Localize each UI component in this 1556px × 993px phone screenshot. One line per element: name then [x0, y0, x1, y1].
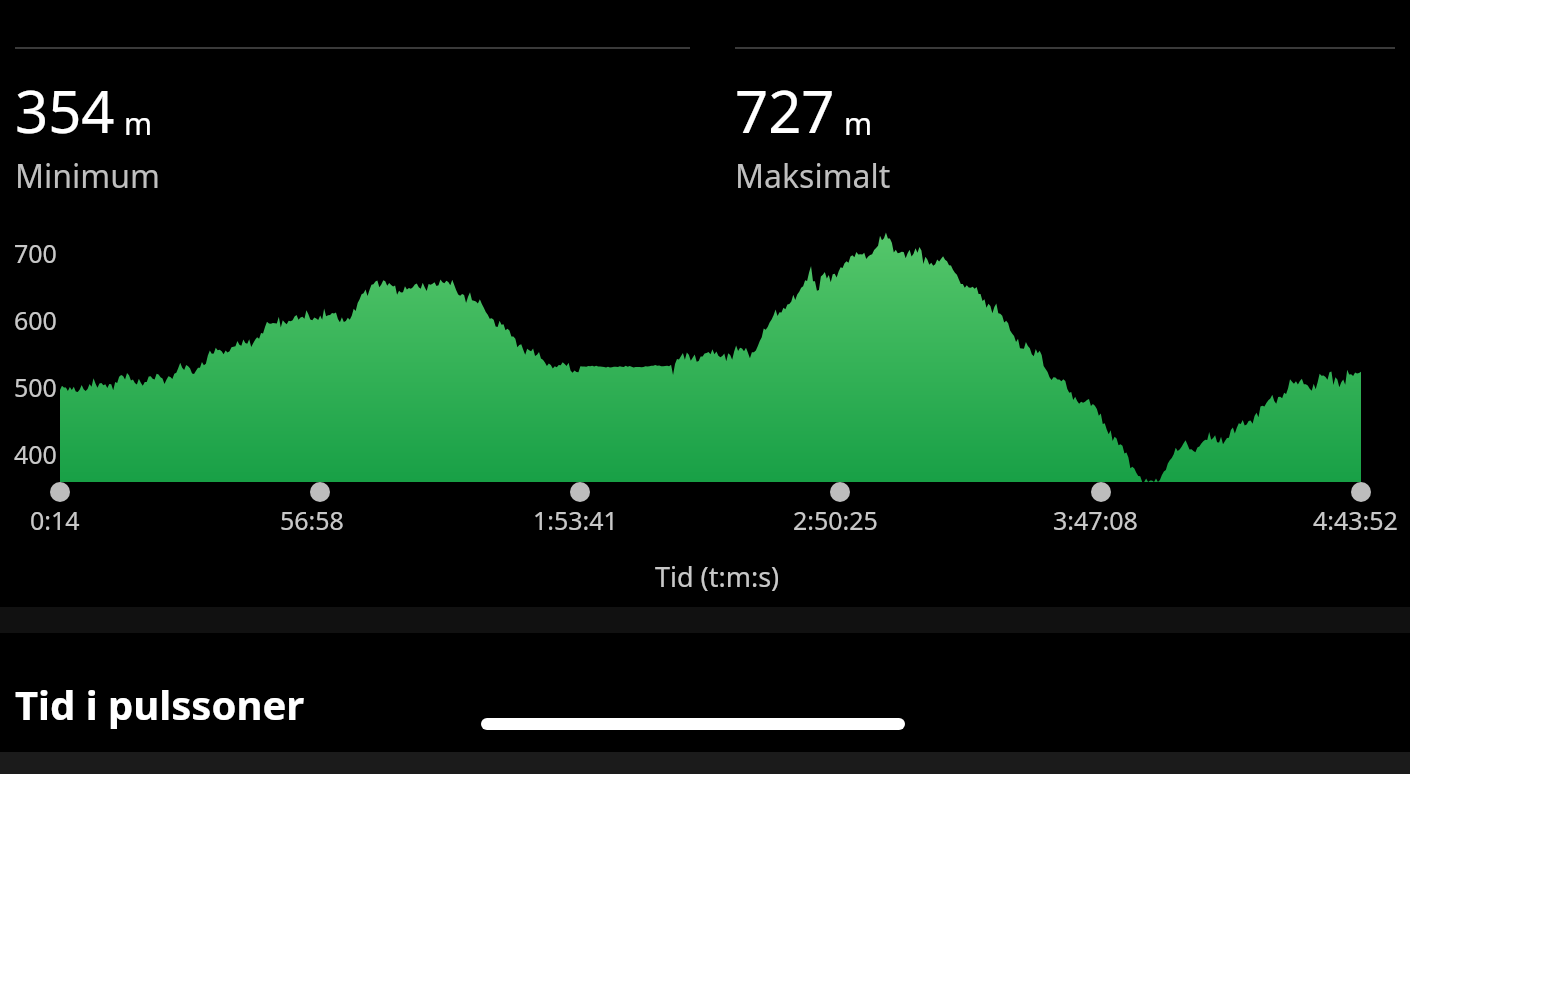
button[interactable]: Tid i pulssoner: [0, 655, 1410, 753]
staticText: 56:58: [280, 503, 344, 537]
staticText: 600: [14, 303, 57, 337]
staticText: Minimum: [15, 154, 160, 198]
staticText: 727: [735, 71, 835, 150]
staticText: Tid (t:m:s): [655, 558, 780, 595]
button[interactable]: 727: [720, 0, 1395, 198]
button[interactable]: Elevation profile chart: [0, 200, 1410, 600]
staticText: 3:47:08: [1053, 503, 1138, 537]
button[interactable]: 354: [0, 0, 690, 198]
staticText: 500: [14, 370, 57, 404]
staticText: m: [844, 103, 873, 144]
staticText: m: [124, 103, 153, 144]
staticText: Maksimalt: [735, 154, 891, 198]
staticText: 354: [15, 71, 115, 150]
staticText: 0:14: [30, 503, 80, 537]
staticText: 700: [14, 236, 57, 270]
staticText: 4:43:52: [1313, 503, 1398, 537]
staticText: 400: [14, 437, 57, 471]
staticText: Tid i pulssoner: [15, 677, 305, 731]
staticText: 1:53:41: [533, 503, 618, 537]
staticText: 2:50:25: [793, 503, 878, 537]
